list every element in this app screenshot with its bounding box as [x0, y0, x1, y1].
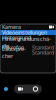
staticText: Lautsprecher: [2, 45, 26, 60]
staticText: Mikrofon: [2, 44, 24, 51]
button[interactable]: Status: [0, 84, 12, 94]
button[interactable]: Hintergrund: [0, 35, 56, 40]
button[interactable]: Camera: [16, 84, 25, 93]
staticText: Hintergrundunschärfe: [2, 35, 51, 50]
button[interactable]: Lautsprecher: [0, 50, 56, 55]
button[interactable]: Videoeinstellungen: [0, 30, 56, 35]
staticText: Standard: [32, 49, 54, 56]
button[interactable]: Hintergrundunschärfe: [0, 40, 56, 45]
staticText: Kamera: [2, 23, 21, 31]
staticText: Videoeinstellungen: [2, 29, 47, 36]
button[interactable]: Settings: [31, 84, 40, 93]
button[interactable]: Mikrofon: [0, 45, 56, 50]
staticText: Hintergrund: [2, 34, 31, 41]
staticText: Standard: [32, 44, 54, 51]
